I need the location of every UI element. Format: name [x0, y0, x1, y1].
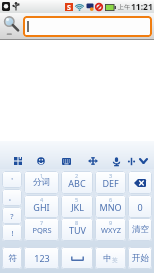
button[interactable]: 清空 — [128, 218, 152, 241]
staticText: ' — [11, 175, 13, 185]
staticText: 开始 — [132, 253, 149, 264]
staticText: 7 — [40, 219, 44, 226]
staticText: GHI — [33, 201, 50, 213]
staticText: 清空 — [132, 224, 149, 235]
staticText: 0 — [137, 201, 143, 213]
button[interactable]: Search box — [23, 16, 152, 37]
staticText: 1 — [40, 172, 44, 179]
staticText: ? — [10, 211, 14, 221]
button[interactable]: Hide keyboard — [134, 152, 152, 170]
staticText: S — [67, 3, 71, 11]
button[interactable]: 1 — [24, 171, 59, 194]
staticText: 中 — [103, 253, 112, 264]
button[interactable]: Choose search engine — [0, 13, 23, 39]
button[interactable]: 开始 — [128, 247, 152, 269]
button[interactable]: 9 — [95, 218, 126, 241]
button[interactable]: 8 — [61, 218, 93, 241]
staticText: 2 — [75, 172, 79, 179]
button[interactable]: Emoji — [32, 152, 50, 170]
staticText: PQRS — [32, 225, 52, 235]
button[interactable]: 5 — [61, 195, 93, 218]
staticText: ABC — [68, 177, 86, 189]
button[interactable]: Keyboard layout — [9, 152, 27, 170]
staticText: 英 — [112, 257, 118, 264]
button[interactable]: 。 — [2, 189, 22, 206]
staticText: 。 — [8, 193, 16, 202]
staticText: DEF — [102, 177, 119, 189]
button[interactable]: Voice input — [107, 152, 125, 170]
button[interactable]: Backspace — [128, 171, 152, 194]
staticText: 123 — [34, 252, 50, 264]
button[interactable]: Space — [61, 247, 93, 269]
button[interactable]: ! — [2, 224, 22, 241]
staticText: 11:21 — [131, 1, 153, 13]
button[interactable]: ? — [2, 207, 22, 224]
button[interactable]: 4 — [24, 195, 59, 218]
button[interactable]: 123 — [24, 247, 59, 269]
staticText: JKL — [71, 201, 84, 213]
button[interactable]: 0 — [128, 195, 152, 218]
button[interactable]: 6 — [95, 195, 126, 218]
staticText: 9 — [109, 219, 113, 226]
button[interactable]: Keyboard settings — [57, 152, 75, 170]
button[interactable]: ' — [2, 171, 22, 188]
button[interactable]: 3 — [95, 171, 126, 194]
button[interactable]: 中 — [95, 247, 126, 269]
staticText: 符 — [8, 253, 17, 264]
button[interactable]: 7 — [24, 218, 59, 241]
staticText: ! — [11, 228, 14, 238]
staticText: 4 — [40, 196, 44, 203]
button[interactable]: Text cursor — [122, 152, 140, 170]
staticText: 6 — [109, 196, 113, 203]
staticText: 3 — [109, 172, 113, 179]
button[interactable]: 符 — [2, 247, 22, 269]
staticText: MNO — [99, 201, 122, 213]
button[interactable]: 2 — [61, 171, 93, 194]
staticText: 上午 — [118, 3, 130, 11]
staticText: TUV — [69, 224, 86, 236]
staticText: 5 — [75, 196, 79, 203]
staticText: 分词 — [33, 177, 50, 188]
staticText: WXYZ — [101, 225, 121, 235]
staticText: 8 — [75, 219, 79, 226]
button[interactable]: Move cursor — [84, 152, 102, 170]
